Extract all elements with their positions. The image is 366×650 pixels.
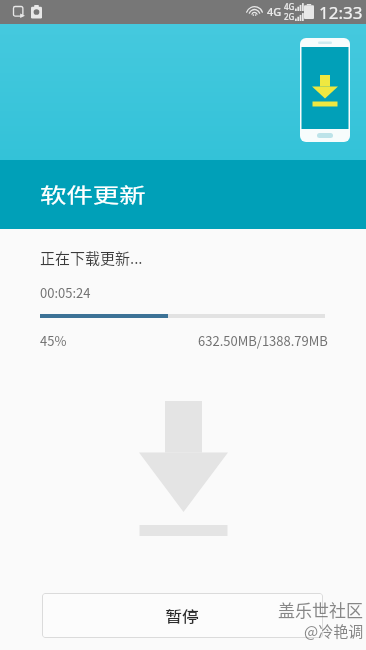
staticText: 4G [284,1,295,12]
staticText: 正在下载更新... [40,247,143,269]
staticText: 4G [267,4,282,19]
staticText: 45% [40,331,67,350]
staticText: @冷艳调 [304,620,364,642]
staticText: 2G [284,11,295,22]
other: Download in progress [139,401,228,536]
staticText: 盖乐世社区 [278,597,363,622]
button[interactable]: 暂停 [42,593,323,638]
staticText: 12:33 [319,1,363,24]
staticText: 632.50MB/1388.79MB [198,331,328,350]
staticText: 暂停 [165,605,200,627]
staticText: 软件更新 [40,179,147,209]
staticText: 00:05:24 [40,283,91,302]
